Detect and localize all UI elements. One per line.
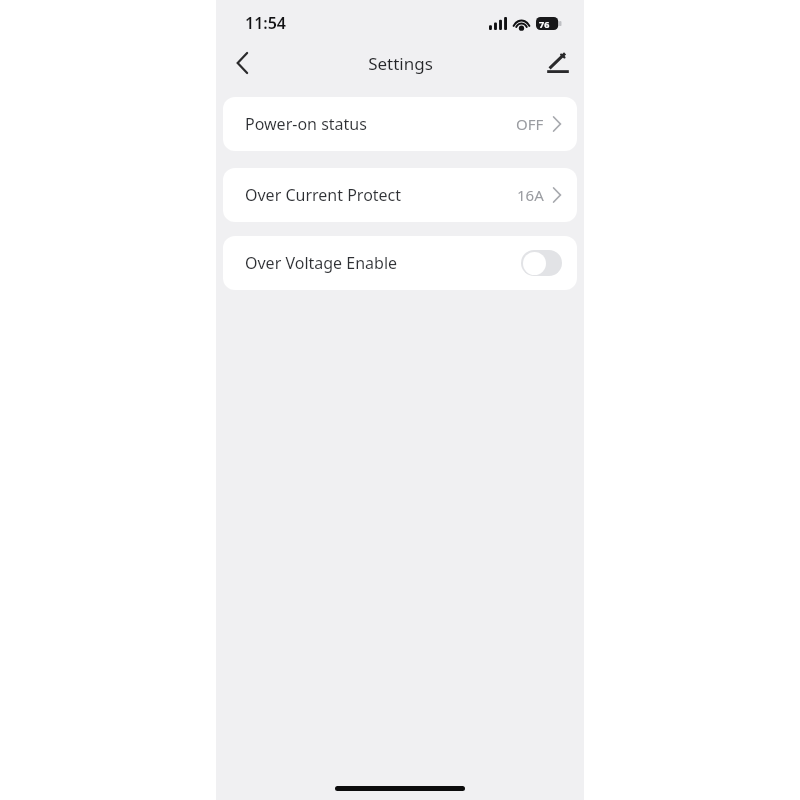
staticText: 11:54 (245, 12, 287, 34)
button[interactable]: Power-on status (223, 97, 577, 151)
button[interactable]: Over Voltage Enable toggle (521, 250, 562, 276)
staticText: Over Voltage Enable (245, 252, 398, 274)
button[interactable]: Back (222, 44, 262, 82)
staticText: 16A (517, 185, 544, 205)
staticText: Over Current Protect (245, 184, 402, 206)
button[interactable]: Over Current Protect (223, 168, 577, 222)
button[interactable]: Edit (538, 44, 578, 82)
staticText: OFF (516, 114, 544, 134)
staticText: 76 (539, 18, 550, 30)
staticText: Power-on status (245, 113, 367, 135)
staticText: Settings (368, 52, 433, 75)
